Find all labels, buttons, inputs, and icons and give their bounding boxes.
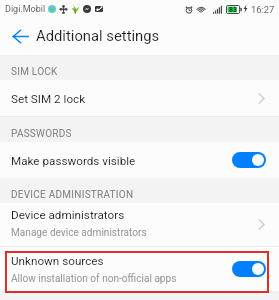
staticText: PASSWORDS bbox=[11, 128, 72, 140]
button[interactable]: Toggle bbox=[232, 152, 266, 168]
button[interactable]: Device administrators bbox=[0, 203, 279, 247]
staticText: Manage device administrators bbox=[11, 227, 147, 239]
staticText: SIM LOCK bbox=[11, 66, 58, 78]
button[interactable]: Make passwords visible bbox=[0, 142, 279, 178]
staticText: Device administrators bbox=[11, 208, 125, 222]
button[interactable]: Unknown sources bbox=[0, 247, 279, 291]
staticText: 83 bbox=[229, 6, 238, 14]
button[interactable]: Back bbox=[4, 18, 37, 55]
staticText: Digi.Mobil bbox=[5, 4, 46, 15]
button[interactable]: Set SIM 2 lock bbox=[0, 80, 279, 117]
staticText: Unknown sources bbox=[11, 254, 104, 268]
staticText: Additional settings bbox=[36, 27, 160, 44]
staticText: Set SIM 2 lock bbox=[11, 92, 86, 106]
staticText: Make passwords visible bbox=[11, 154, 136, 168]
button[interactable]: Toggle bbox=[232, 261, 266, 277]
staticText: Allow installation of non-official apps bbox=[11, 273, 177, 285]
staticText: DEVICE ADMINISTRATION bbox=[11, 189, 134, 201]
staticText: 16:27 bbox=[251, 4, 275, 15]
